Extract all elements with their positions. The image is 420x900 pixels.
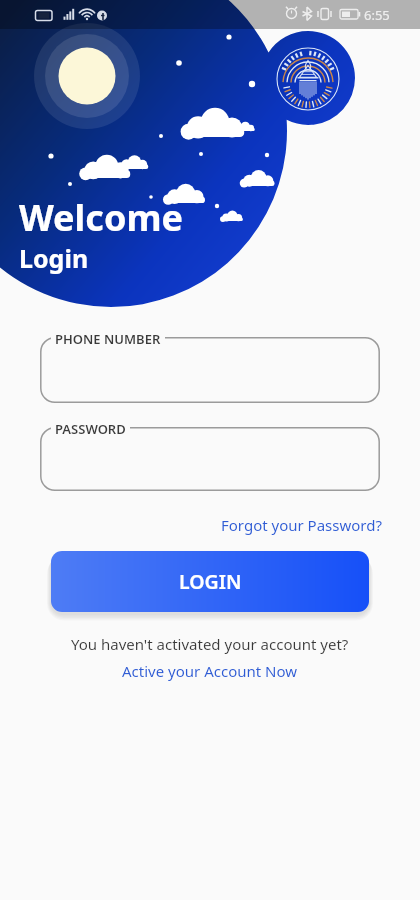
staticText: PHONE NUMBER — [55, 330, 161, 348]
staticText: PASSWORD — [55, 420, 126, 438]
button[interactable]: PASSWORD — [40, 427, 380, 491]
staticText: LOGIN — [179, 568, 242, 595]
button[interactable]: LOGIN — [51, 551, 369, 612]
staticText: You haven't activated your account yet? — [71, 634, 349, 654]
button[interactable]: Active your Account Now — [116, 661, 304, 681]
button[interactable]: PHONE NUMBER — [40, 337, 380, 403]
button[interactable]: Forgot your Password? — [217, 511, 386, 539]
staticText: 6:55 — [364, 6, 390, 24]
staticText: Login — [19, 241, 89, 275]
staticText: Welcome — [19, 193, 183, 242]
